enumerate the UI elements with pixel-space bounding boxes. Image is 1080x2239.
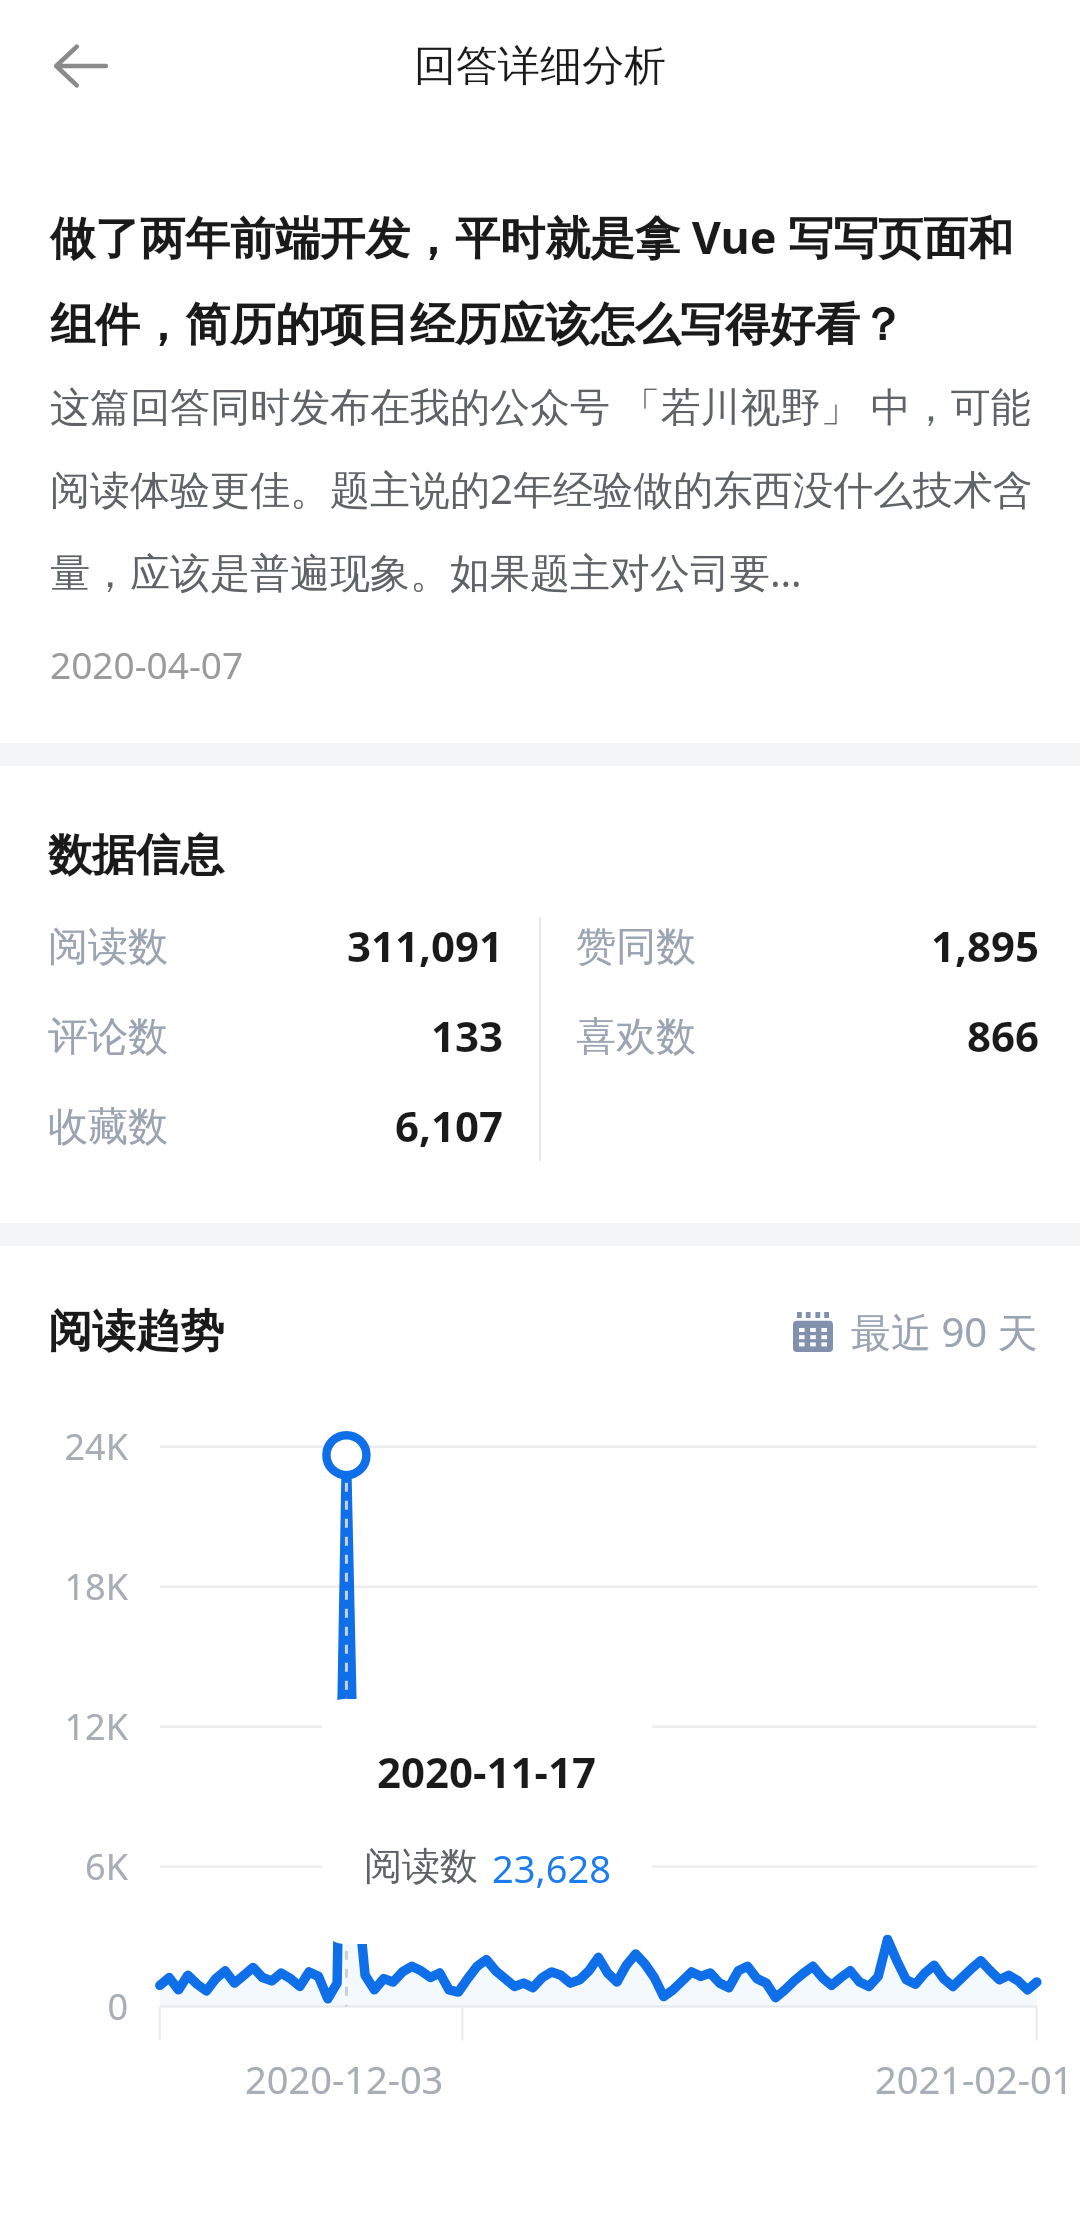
staticText: 866	[967, 1007, 1040, 1064]
staticText: 24K	[0, 1422, 128, 1471]
staticText: 133	[431, 1007, 504, 1064]
staticText: 评论数	[48, 1011, 168, 1061]
staticText: 23,628	[492, 1842, 611, 1894]
staticText: 阅读趋势	[48, 1304, 224, 1359]
staticText: 2020-04-07	[50, 639, 244, 689]
staticText: 阅读数	[364, 1842, 478, 1890]
staticText: 阅读数	[48, 921, 168, 971]
button[interactable]: Back	[24, 10, 136, 122]
staticText: 喜欢数	[576, 1011, 696, 1061]
other: Date range	[793, 1312, 833, 1352]
staticText: 收藏数	[48, 1101, 168, 1151]
staticText: 这篇回答同时发布在我的公众号 「若川视野」 中，可能阅读体验更佳。题主说的2年经…	[50, 378, 1040, 599]
button[interactable]: 赞同数	[576, 917, 1040, 974]
staticText: 2020-12-03	[245, 2053, 444, 2105]
staticText: 6,107	[395, 1097, 504, 1154]
button[interactable]: Date range	[793, 1304, 1038, 1359]
staticText: 311,091	[347, 917, 504, 974]
staticText: 最近 90 天	[851, 1304, 1038, 1359]
staticText: 数据信息	[48, 828, 224, 883]
button[interactable]: 阅读数	[48, 917, 504, 974]
staticText: 0	[0, 1982, 128, 2031]
button[interactable]: 2020-11-17	[322, 1699, 652, 1944]
staticText: 回答详细分析	[414, 40, 666, 93]
staticText: 6K	[0, 1842, 128, 1891]
staticText: 2020-11-17	[377, 1743, 597, 1800]
staticText: 1,895	[931, 917, 1040, 974]
staticText: 赞同数	[576, 921, 696, 971]
button[interactable]: 评论数	[48, 1007, 504, 1064]
staticText: 2021-02-01	[875, 2053, 1074, 2105]
button[interactable]: 收藏数	[48, 1097, 504, 1154]
staticText: 18K	[0, 1562, 128, 1611]
button[interactable]: 喜欢数	[576, 1007, 1040, 1064]
staticText: 做了两年前端开发，平时就是拿 Vue 写写页面和组件，简历的项目经历应该怎么写得…	[50, 206, 1040, 354]
staticText: 12K	[0, 1702, 128, 1751]
